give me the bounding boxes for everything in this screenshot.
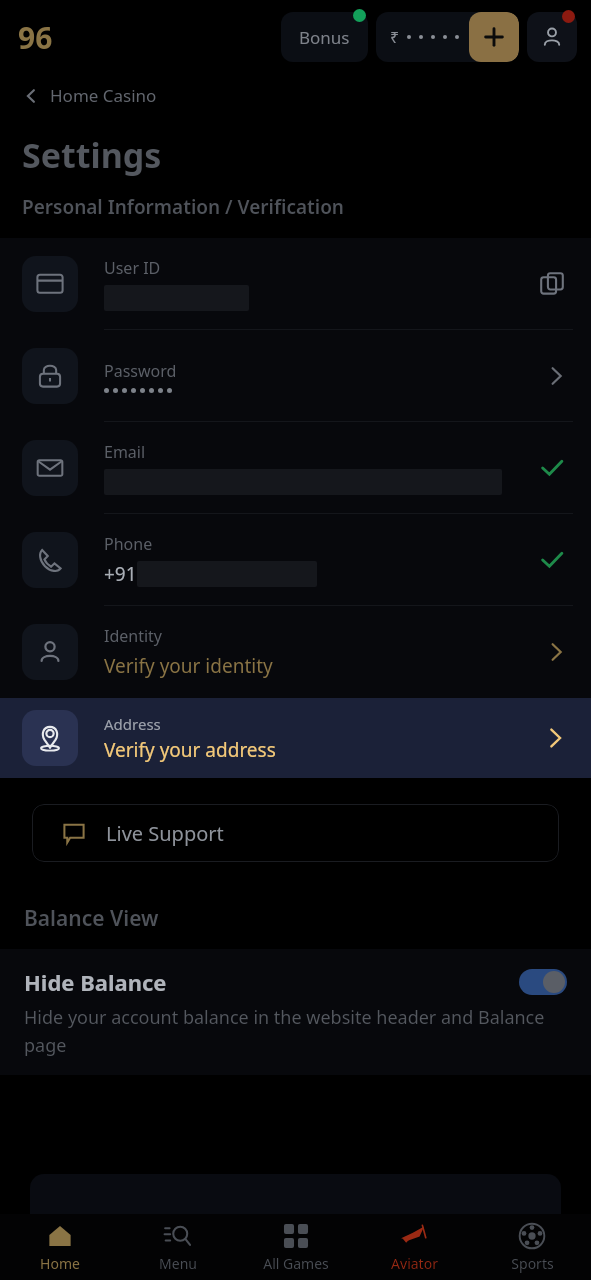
staticText: Address (104, 714, 161, 734)
staticText: Bonus (299, 26, 350, 49)
staticText: 96 (18, 17, 53, 58)
staticText: Hide Balance (24, 967, 519, 997)
button[interactable]: Bonus (281, 12, 368, 62)
button[interactable]: Live Support (32, 804, 559, 862)
staticText: Aviator (391, 1254, 438, 1273)
staticText: ₹ (390, 26, 400, 48)
staticText: Home (40, 1254, 80, 1273)
staticText: All Games (263, 1254, 329, 1273)
button[interactable]: User ID (0, 238, 591, 330)
staticText: Verify your identity (104, 653, 273, 679)
button[interactable]: Identity (0, 606, 591, 698)
staticText: Personal Information / Verification (22, 194, 344, 220)
button[interactable]: Aviator (355, 1214, 473, 1280)
staticText: Home Casino (50, 84, 157, 107)
button[interactable]: Deposit (469, 12, 519, 62)
staticText: Live Support (106, 820, 224, 847)
staticText: Menu (159, 1254, 197, 1273)
staticText: Identity (104, 625, 163, 647)
button[interactable]: Phone (0, 514, 591, 606)
button[interactable]: Sports (473, 1214, 591, 1280)
button[interactable]: Email (0, 422, 591, 514)
staticText: Sports (511, 1254, 554, 1273)
button[interactable]: Address (0, 698, 591, 778)
staticText: Email (104, 441, 146, 463)
staticText: Verify your address (104, 737, 276, 763)
button[interactable]: Copy User ID (535, 267, 569, 301)
button[interactable]: Password (0, 330, 591, 422)
button[interactable]: ₹ (376, 26, 469, 48)
button[interactable]: Home Casino (22, 84, 157, 107)
staticText: Password (104, 360, 177, 382)
staticText: +91 (104, 561, 137, 587)
staticText: Hide your account balance in the website… (24, 1005, 567, 1057)
button[interactable] (519, 969, 567, 995)
staticText: Settings (22, 132, 162, 178)
button[interactable]: Profile (527, 12, 577, 62)
button[interactable]: 96 (18, 17, 53, 58)
button[interactable]: All Games (237, 1214, 355, 1280)
button[interactable]: Menu (119, 1214, 237, 1280)
staticText: Phone (104, 533, 153, 555)
button[interactable]: Home (0, 1214, 119, 1280)
staticText: Balance View (24, 904, 159, 933)
staticText: User ID (104, 257, 161, 279)
